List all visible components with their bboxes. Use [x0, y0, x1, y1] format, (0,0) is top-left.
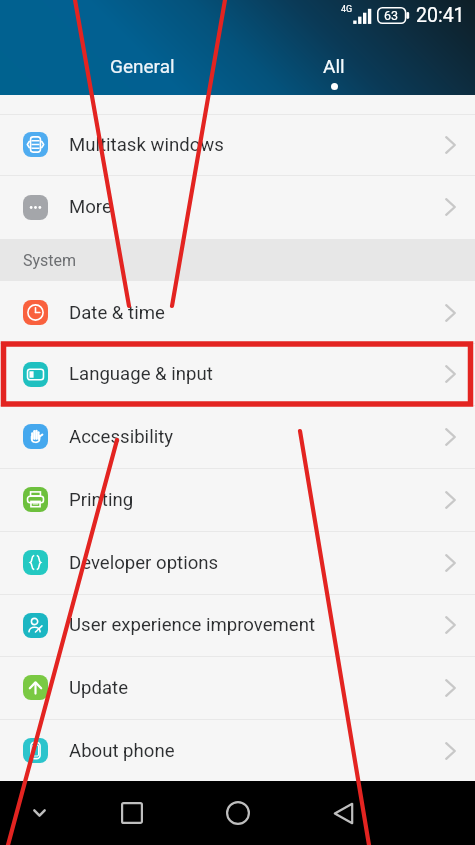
button[interactable]: Language & input	[0, 343, 475, 405]
button[interactable]: Hide navigation bar	[0, 781, 78, 845]
button[interactable]: Back	[300, 781, 386, 845]
button[interactable]: Date & time	[0, 281, 475, 344]
button[interactable]: Multitask windows	[0, 114, 475, 175]
staticText: 63	[384, 8, 399, 23]
button[interactable]: General	[87, 55, 197, 85]
staticText: 20:41	[416, 4, 465, 27]
button[interactable]: User experience improvement	[0, 594, 475, 656]
staticText: Printing	[69, 489, 134, 511]
staticText: General	[110, 55, 175, 77]
staticText: 4G	[341, 4, 353, 15]
staticText: System	[23, 251, 77, 270]
staticText: Developer options	[69, 552, 219, 574]
button[interactable]: Printing	[0, 468, 475, 531]
staticText: Accessibility	[69, 426, 174, 448]
button[interactable]: More	[0, 175, 475, 239]
button[interactable]: Recent apps	[89, 781, 175, 845]
button[interactable]: All	[279, 55, 389, 95]
staticText: Multitask windows	[69, 134, 224, 156]
staticText: Language & input	[69, 363, 213, 385]
staticText: Update	[69, 677, 129, 699]
button[interactable]: About phone	[0, 719, 475, 782]
button[interactable]: Accessibility	[0, 405, 475, 468]
staticText: More	[69, 196, 112, 218]
button[interactable]: Home	[194, 781, 281, 845]
button[interactable]: Update	[0, 656, 475, 719]
staticText: User experience improvement	[69, 614, 316, 636]
staticText: All	[323, 55, 345, 77]
staticText: About phone	[69, 740, 175, 762]
button[interactable]: Developer options	[0, 531, 475, 594]
staticText: Date & time	[69, 302, 165, 324]
